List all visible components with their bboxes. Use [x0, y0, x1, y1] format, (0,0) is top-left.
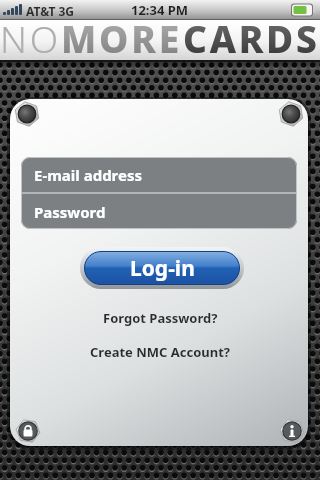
button[interactable]: Log-in: [80, 247, 244, 289]
button[interactable]: [278, 417, 306, 445]
button[interactable]: [14, 417, 42, 445]
staticText: CARDS: [183, 13, 320, 55]
button[interactable]: Create NMC Account?: [90, 343, 231, 361]
staticText: MORE: [61, 13, 183, 55]
staticText: Password: [34, 202, 106, 222]
staticText: AT&T 3G: [26, 3, 75, 19]
staticText: Log-in: [130, 254, 195, 283]
button[interactable]: Password: [21, 194, 297, 229]
staticText: 12:34 PM: [131, 1, 189, 19]
button[interactable]: E-mail address: [21, 157, 297, 192]
button[interactable]: Forgot Password?: [103, 309, 218, 327]
staticText: NO: [0, 13, 61, 55]
staticText: E-mail address: [34, 165, 143, 185]
